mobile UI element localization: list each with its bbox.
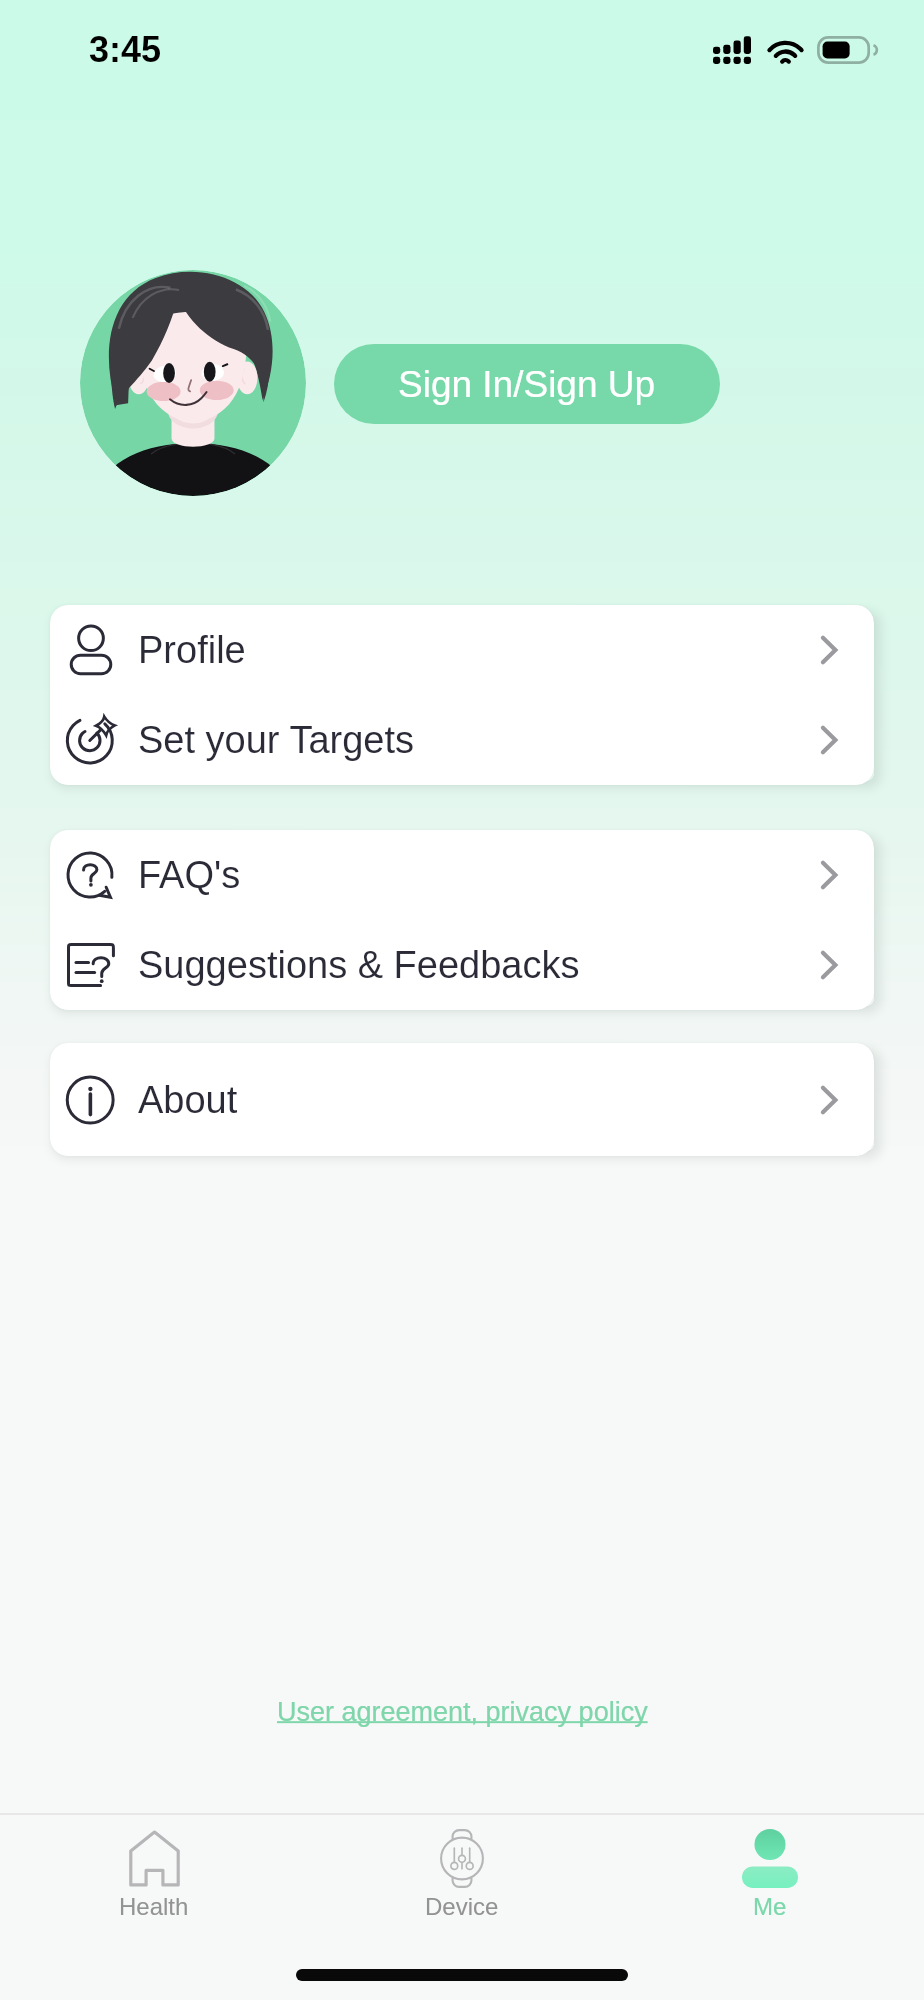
- button[interactable]: About: [50, 1043, 874, 1156]
- button[interactable]: Sign In/Sign Up: [334, 344, 720, 424]
- staticText: Set your Targets: [138, 719, 415, 761]
- button[interactable]: Profile photo: [80, 270, 306, 496]
- staticText: Profile: [138, 629, 246, 671]
- staticText: About: [138, 1079, 238, 1121]
- button[interactable]: Suggestions & Feedbacks: [50, 920, 874, 1010]
- button[interactable]: Profile: [50, 605, 874, 695]
- button[interactable]: Set your Targets: [50, 695, 874, 785]
- button[interactable]: Device: [308, 1815, 616, 1935]
- button[interactable]: Health: [0, 1815, 308, 1935]
- button[interactable]: User agreement, privacy policy: [277, 1697, 648, 1727]
- button[interactable]: Me: [616, 1815, 924, 1935]
- staticText: Sign In/Sign Up: [398, 364, 656, 405]
- button[interactable]: FAQ's: [50, 830, 874, 920]
- staticText: Device: [425, 1893, 499, 1920]
- staticText: Health: [119, 1893, 189, 1920]
- staticText: Me: [753, 1893, 787, 1920]
- staticText: FAQ's: [138, 854, 241, 896]
- staticText: 3:45: [89, 29, 162, 69]
- staticText: Suggestions & Feedbacks: [138, 944, 580, 986]
